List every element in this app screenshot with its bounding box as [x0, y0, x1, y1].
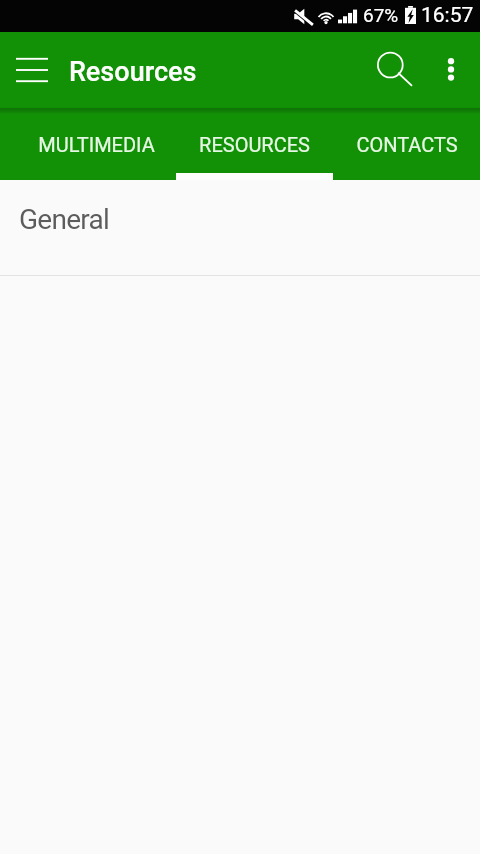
- staticText: 67%: [363, 4, 399, 26]
- button[interactable]: CONTACTS: [333, 108, 480, 180]
- button[interactable]: MULTIMEDIA: [17, 108, 176, 180]
- staticText: CONTACTS: [356, 133, 458, 156]
- staticText: General: [19, 203, 109, 236]
- button[interactable]: General: [0, 180, 480, 275]
- staticText: RESOURCES: [199, 133, 310, 156]
- button[interactable]: RESOURCES: [176, 108, 333, 180]
- staticText: MULTIMEDIA: [38, 133, 155, 156]
- button[interactable]: Search: [360, 32, 422, 108]
- staticText: 16:57: [421, 3, 474, 28]
- staticText: Resources: [69, 56, 197, 88]
- button[interactable]: More options: [427, 32, 477, 108]
- button[interactable]: Open navigation drawer: [0, 32, 64, 108]
